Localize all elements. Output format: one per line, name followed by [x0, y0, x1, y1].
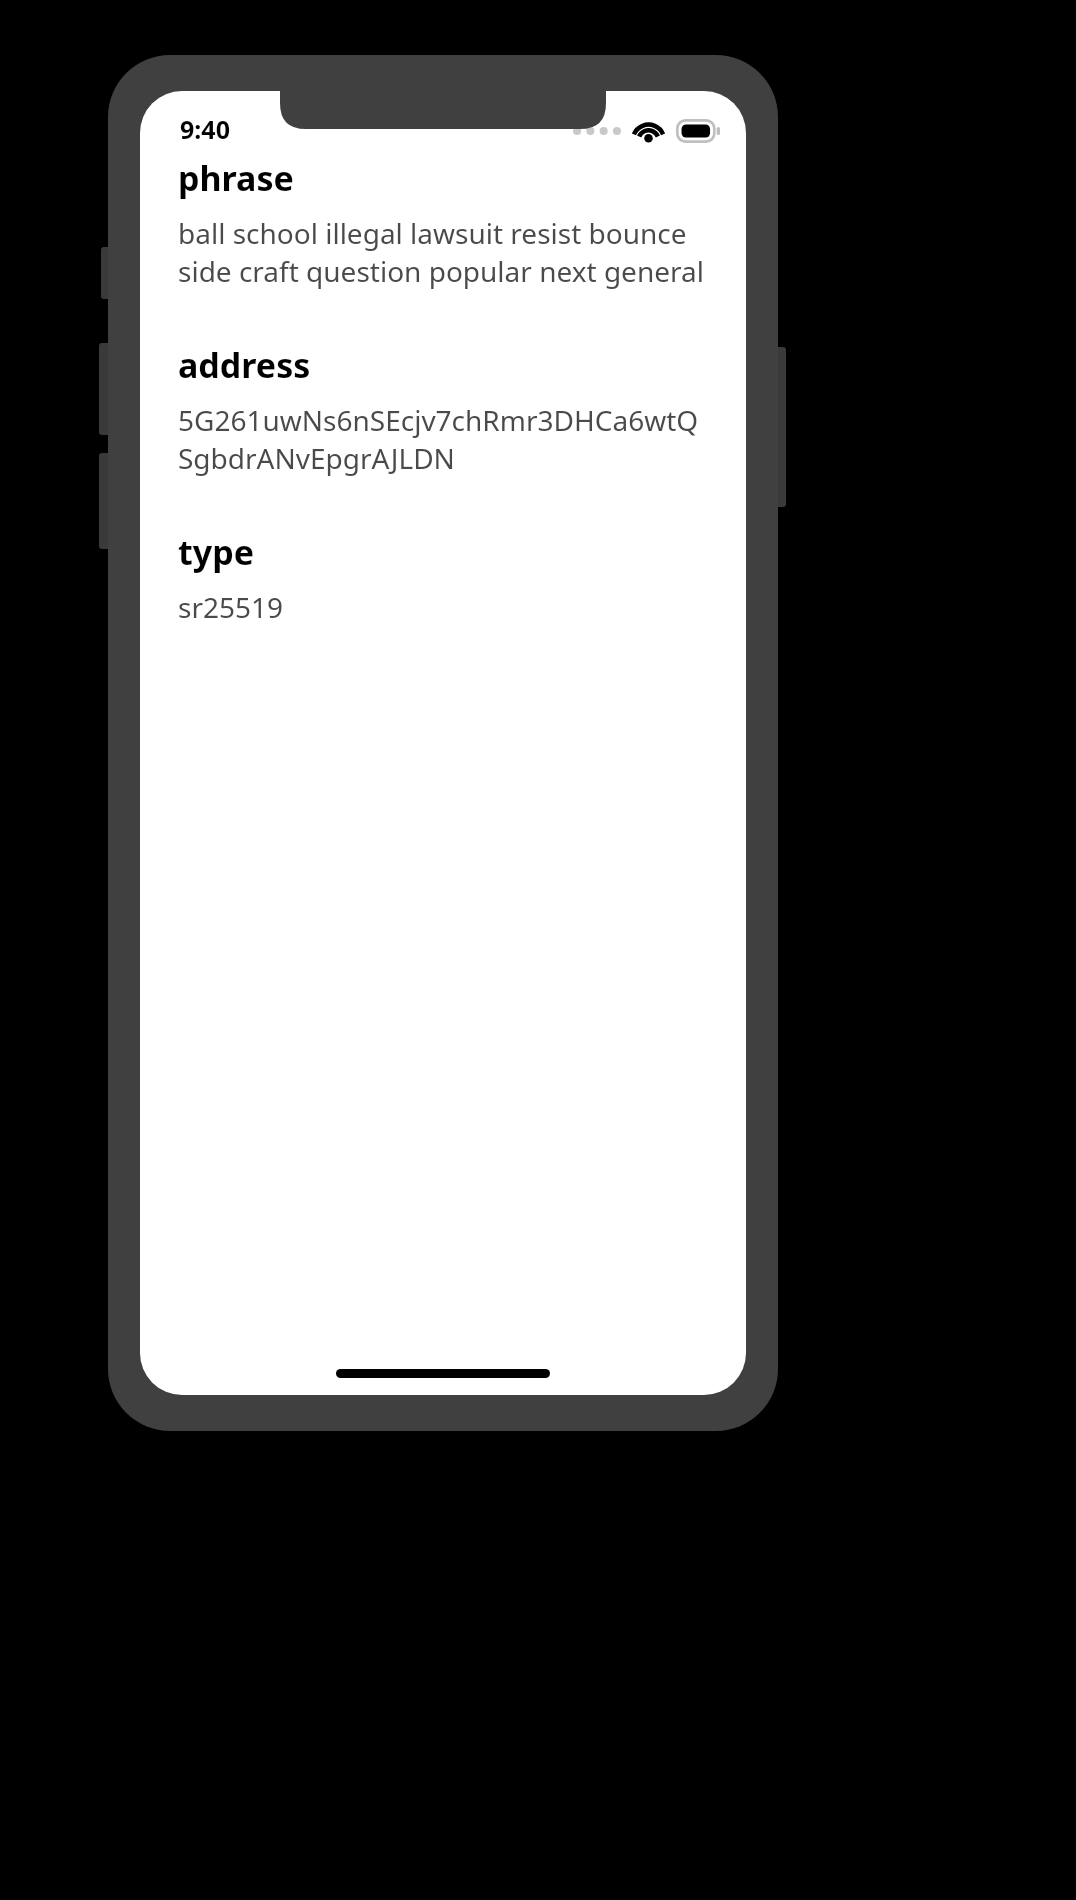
staticText: 5G261uwNs6nSEcjv7chRmr3DHCa6wtQSgbdrANvE… — [178, 401, 708, 477]
other: Home indicator — [336, 1369, 550, 1378]
staticText: sr25519 — [178, 588, 284, 626]
button[interactable]: type — [178, 529, 708, 626]
staticText: 9:40 — [180, 112, 230, 146]
staticText: address — [178, 342, 311, 388]
staticText: phrase — [178, 155, 294, 201]
staticText: type — [178, 529, 254, 575]
button[interactable]: phrase — [178, 155, 708, 290]
button[interactable]: address — [178, 342, 708, 477]
staticText: ball school illegal lawsuit resist bounc… — [178, 214, 708, 290]
